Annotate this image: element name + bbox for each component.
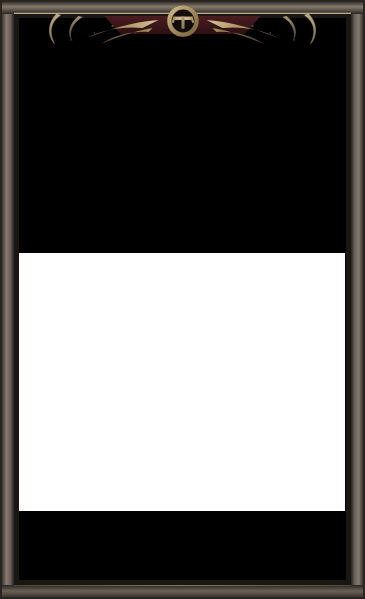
button[interactable]: Emblem: [166, 4, 200, 38]
